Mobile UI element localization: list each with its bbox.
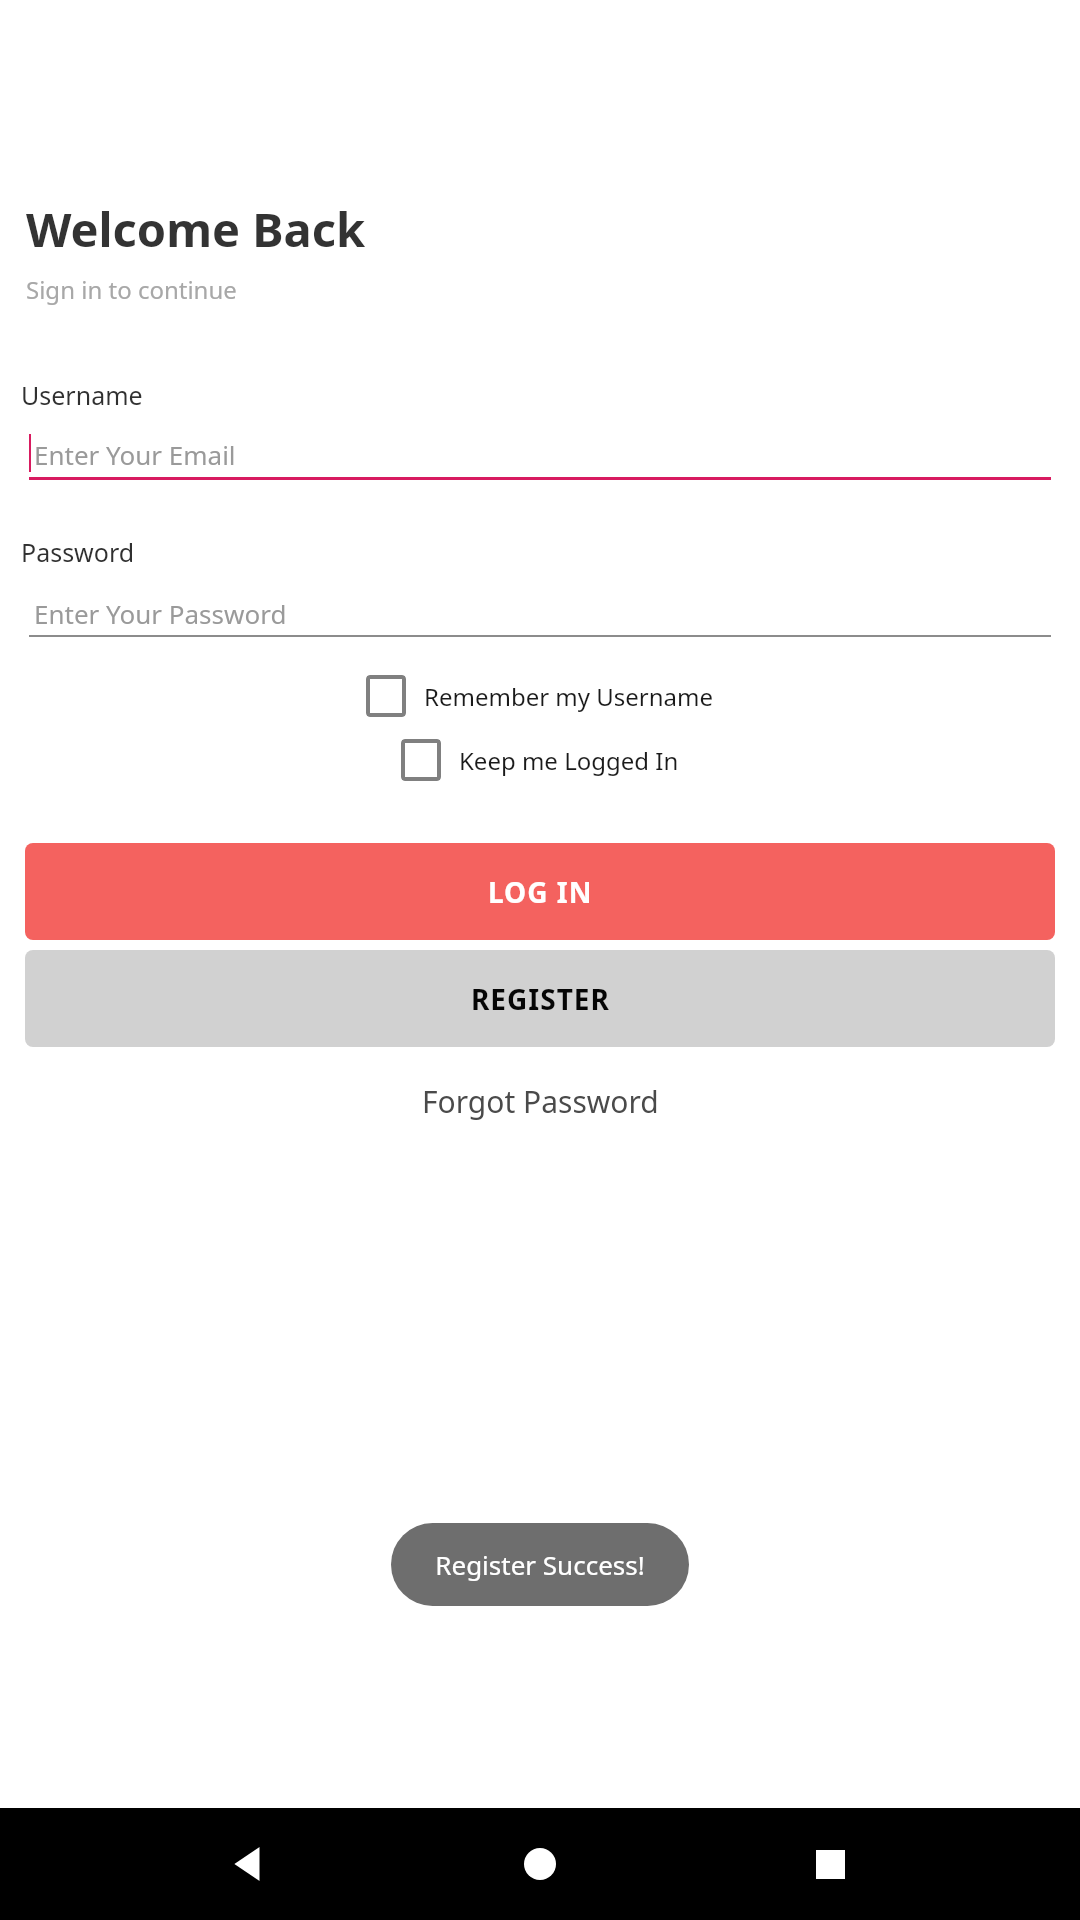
staticText: Username — [21, 378, 143, 412]
staticText: Password — [21, 535, 135, 569]
staticText: Enter Your Email — [34, 437, 236, 472]
button[interactable]: Remember my Username — [0, 675, 1080, 717]
staticText: Enter Your Password — [34, 596, 287, 631]
button[interactable]: Back — [210, 1824, 290, 1904]
button[interactable]: Enter Your Password — [29, 589, 1051, 637]
staticText: Sign in to continue — [26, 273, 237, 306]
button[interactable]: Forgot Password — [422, 1081, 659, 1122]
button[interactable]: Keep me Logged In — [0, 739, 1080, 781]
staticText: Register Success! — [435, 1547, 645, 1582]
button[interactable]: LOG IN — [25, 843, 1055, 940]
staticText: Keep me Logged In — [459, 744, 679, 777]
staticText: Remember my Username — [424, 680, 714, 713]
staticText: REGISTER — [471, 980, 610, 1018]
button[interactable]: Home — [500, 1824, 580, 1904]
staticText: Welcome Back — [26, 197, 366, 261]
button[interactable]: REGISTER — [25, 950, 1055, 1047]
button[interactable]: Recent apps — [790, 1824, 870, 1904]
button[interactable]: Enter Your Email — [29, 429, 1051, 480]
staticText: LOG IN — [488, 873, 593, 911]
